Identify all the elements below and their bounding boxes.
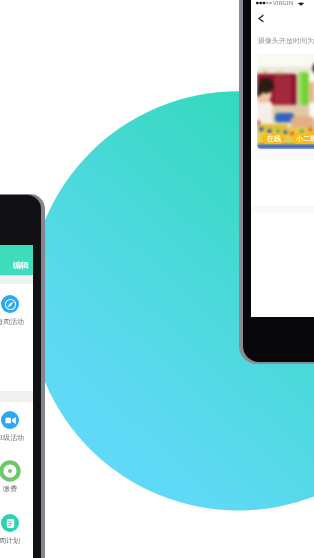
staticText: VIRGIN [273, 0, 294, 7]
staticText: 周计划 [0, 536, 20, 545]
button[interactable]: 周计划 [0, 505, 31, 557]
button[interactable]: 缴费 [0, 453, 31, 505]
staticText: 在线 [267, 134, 281, 143]
button[interactable]: 在线 [257, 53, 314, 149]
staticText: 每周活动 [0, 317, 24, 326]
staticText: 编辑 [13, 260, 29, 270]
button[interactable]: 班级活动 [0, 402, 31, 454]
button[interactable]: 每周活动 [0, 286, 31, 338]
button[interactable]: 在线 [262, 133, 285, 144]
button[interactable]: 小二班 [292, 133, 314, 144]
staticText: 缴费 [3, 484, 17, 493]
staticText: 摄像头开放时间为:1 [258, 36, 314, 46]
button[interactable]: Back [251, 9, 314, 27]
staticText: 班级活动 [0, 433, 24, 442]
staticText: 小二班 [296, 134, 314, 143]
